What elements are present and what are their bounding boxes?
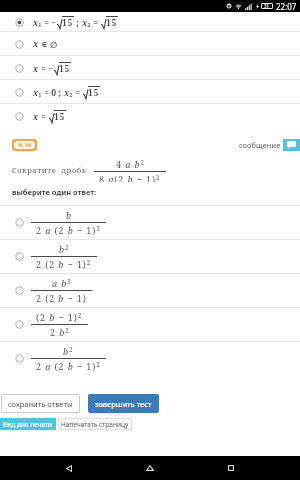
button[interactable]: завершить тест xyxy=(88,394,159,413)
staticText: 15 xyxy=(54,111,66,123)
staticText: N 16 xyxy=(18,141,32,149)
other: Message xyxy=(283,139,300,151)
staticText: завершить тест xyxy=(95,399,152,409)
staticText: ; xyxy=(74,17,79,29)
button[interactable]: Home xyxy=(138,456,162,480)
staticText: = xyxy=(39,111,49,123)
staticText: Напечатать страницу xyxy=(61,420,129,429)
staticText: 31 xyxy=(264,3,270,9)
staticText: сохранить ответы xyxy=(8,399,73,409)
staticText: = 0 ; xyxy=(42,87,61,99)
button[interactable]: Вид для печати xyxy=(0,418,56,430)
button[interactable]: b xyxy=(0,205,300,239)
staticText: Сократите дробь xyxy=(12,165,87,175)
staticText: 15 xyxy=(106,17,118,29)
staticText: b2 xyxy=(59,243,70,255)
button[interactable]: N 16 xyxy=(12,139,37,151)
staticText: x xyxy=(33,63,39,75)
staticText: 2 b2 xyxy=(50,326,70,338)
staticText: x xyxy=(33,111,39,123)
button[interactable]: (2 b − 1)2 xyxy=(0,307,300,341)
staticText: a b3 xyxy=(52,277,72,289)
staticText: x1 xyxy=(33,17,42,29)
staticText: x2 xyxy=(82,17,91,29)
button[interactable]: Recents xyxy=(219,456,243,480)
button[interactable]: x xyxy=(0,104,300,128)
staticText: 8 a(2 b − 1)2 xyxy=(99,173,161,182)
staticText: x2 xyxy=(64,87,73,99)
button[interactable]: Напечатать страницу xyxy=(58,418,132,430)
staticText: 15 xyxy=(88,87,100,99)
button[interactable]: b2 xyxy=(0,239,300,273)
staticText: = − xyxy=(42,17,57,29)
staticText: 4 a b2 xyxy=(116,158,145,170)
staticText: выберите один ответ: xyxy=(12,187,97,197)
staticText: 15 xyxy=(62,17,74,29)
staticText: = − xyxy=(39,63,54,75)
staticText: (2 b − 1)2 xyxy=(36,311,83,323)
button[interactable]: x1 xyxy=(0,80,300,104)
button[interactable]: a b3 xyxy=(0,273,300,307)
staticText: 2 a (2 b − 1)3 xyxy=(36,224,101,236)
staticText: 15 xyxy=(59,63,71,75)
staticText: 2 (2 b − 1)2 xyxy=(36,258,92,270)
staticText: 22:07 xyxy=(276,1,297,12)
staticText: b2 xyxy=(63,345,74,357)
staticText: ∅ xyxy=(50,40,58,50)
staticText: Вид для печати xyxy=(3,420,53,429)
button[interactable]: x xyxy=(0,32,300,56)
staticText: = xyxy=(91,17,101,29)
button[interactable]: Back xyxy=(57,456,81,480)
staticText: = xyxy=(73,87,83,99)
staticText: 2 (2 b − 1) xyxy=(36,292,87,304)
button[interactable]: сохранить ответы xyxy=(1,394,80,413)
staticText: x1 xyxy=(33,87,42,99)
button[interactable]: сообщение xyxy=(239,139,300,151)
staticText: 2 a (2 b − 1)2 xyxy=(36,360,101,372)
staticText: b xyxy=(66,209,72,221)
button[interactable]: x xyxy=(0,56,300,80)
button[interactable]: x1 xyxy=(0,12,300,32)
staticText: ∈ xyxy=(39,38,50,50)
staticText: x xyxy=(33,38,39,50)
staticText: сообщение xyxy=(239,140,281,150)
button[interactable]: b2 xyxy=(0,341,300,375)
